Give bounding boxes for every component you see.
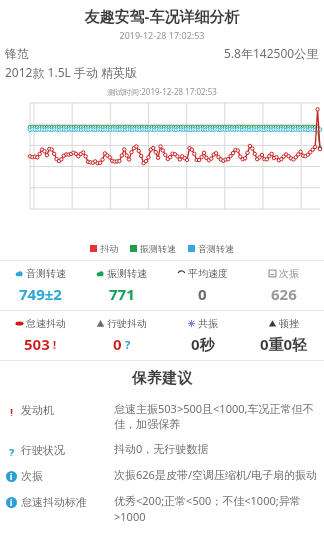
staticText: 0: [113, 334, 122, 354]
staticText: i: [10, 471, 13, 482]
staticText: 749±2: [19, 284, 62, 304]
other: Secondary vibration: [268, 269, 277, 278]
staticText: 5.8年142500公里: [224, 45, 319, 61]
staticText: 行驶抖动: [107, 317, 147, 330]
staticText: 怠速主振503>500且<1000,车况正常但不佳，加强保养: [114, 401, 318, 431]
staticText: 0: [198, 284, 207, 304]
button[interactable]: Driving shake: [81, 315, 162, 356]
staticText: ?: [9, 445, 15, 456]
button[interactable]: Audio RPM: [0, 265, 81, 306]
button[interactable]: Vibration RPM: [81, 265, 162, 306]
staticText: 抖动0，无行驶数据: [114, 441, 318, 456]
staticText: 优秀<200;正常<500；不佳<1000;异常>1000: [114, 493, 318, 524]
staticText: 发动机: [21, 403, 54, 417]
staticText: 怠速抖动标准: [21, 495, 87, 509]
staticText: 顿挫: [279, 317, 299, 330]
button[interactable]: Resonance: [162, 315, 243, 356]
other: Jerk: [268, 319, 277, 328]
staticText: 平均速度: [188, 267, 228, 280]
staticText: ?: [125, 337, 131, 352]
staticText: 次振626是皮带/空调压缩机/电子扇的振动: [114, 467, 318, 482]
staticText: 2012款 1.5L 手动 精英版: [5, 64, 138, 80]
button[interactable]: Average speed: [162, 265, 243, 306]
staticText: 次振: [21, 469, 43, 483]
staticText: 503: [24, 334, 50, 354]
other: Driving shake: [96, 319, 105, 328]
staticText: 振测转速: [140, 243, 176, 254]
staticText: 共振: [198, 317, 218, 330]
other: Audio RPM: [15, 269, 24, 278]
staticText: 怠速抖动: [26, 317, 66, 330]
staticText: !: [53, 337, 57, 352]
staticText: 测试时间:2019-12-28 17:02:53: [0, 86, 324, 97]
button[interactable]: i: [0, 462, 324, 488]
button[interactable]: Jerk: [243, 315, 324, 356]
button[interactable]: !: [0, 396, 324, 436]
staticText: i: [10, 497, 13, 508]
staticText: 771: [109, 284, 135, 304]
button[interactable]: ?: [0, 436, 324, 462]
staticText: 振测转速: [107, 267, 147, 280]
button[interactable]: i: [0, 488, 324, 529]
staticText: 2019-12-28 17:02:53: [0, 29, 324, 41]
staticText: !: [10, 405, 14, 416]
staticText: 626: [271, 284, 297, 304]
button[interactable]: Idle shake: [0, 315, 81, 356]
other: Average speed: [177, 269, 186, 278]
staticText: 次振: [279, 267, 299, 280]
staticText: 友趣安驾-车况详细分析: [0, 6, 324, 26]
staticText: 抖动: [100, 243, 118, 254]
button[interactable]: Secondary vibration: [243, 265, 324, 306]
staticText: 0重0轻: [260, 334, 308, 354]
other: Resonance: [187, 319, 196, 328]
staticText: 保养建议: [0, 369, 324, 388]
staticText: 行驶状况: [21, 443, 65, 457]
staticText: 音测转速: [26, 267, 66, 280]
staticText: 音测转速: [198, 243, 234, 254]
staticText: 锋范: [5, 46, 29, 61]
other: Idle shake: [15, 319, 24, 328]
staticText: 0秒: [191, 334, 215, 354]
other: Vibration RPM: [96, 269, 105, 278]
